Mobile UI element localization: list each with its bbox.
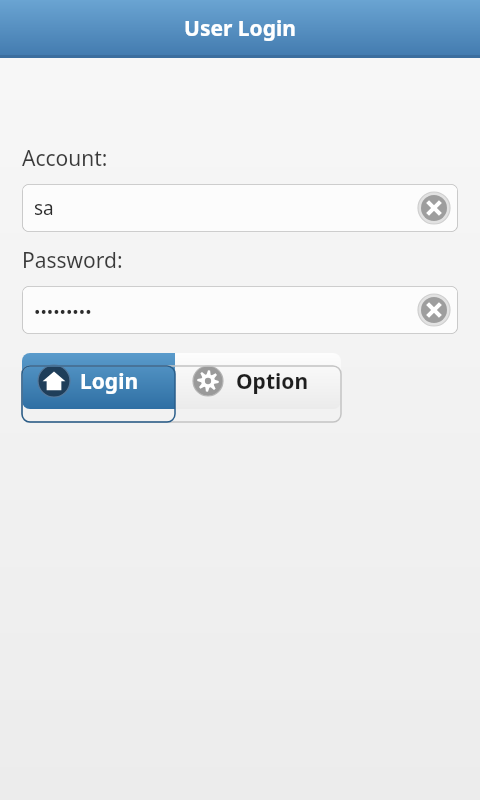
other: Option [193,366,223,396]
button[interactable]: Option [175,353,341,409]
staticText: Option [236,367,309,396]
staticText: User Login [184,14,296,43]
staticText: Password: [22,246,123,275]
button[interactable]: Login [22,353,175,409]
staticText: Account: [22,144,108,173]
other: Login [38,365,70,397]
button[interactable]: ••••••••• [22,286,458,334]
button[interactable]: Clear text [417,293,451,327]
staticText: ••••••••• [34,300,92,323]
button[interactable]: sa [22,184,458,232]
staticText: sa [34,195,54,221]
staticText: Login [80,367,139,396]
button[interactable]: Clear text [417,191,451,225]
